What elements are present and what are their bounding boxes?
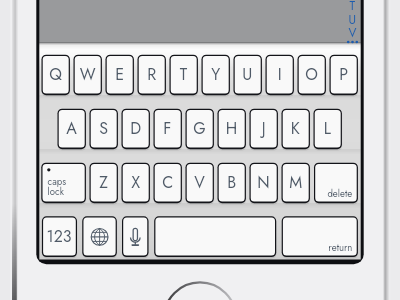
button[interactable]: On-screen keyboard	[0, 0, 400, 300]
